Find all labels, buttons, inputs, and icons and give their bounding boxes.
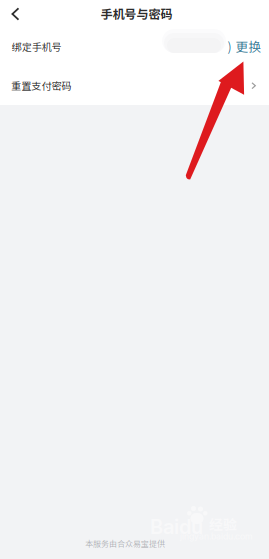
button[interactable]: 绑定手机号 — [0, 28, 269, 64]
staticText: 本服务由合众易宝提供 — [85, 537, 165, 549]
staticText: 更换 — [235, 37, 261, 55]
staticText: 手机号与密码 — [100, 5, 172, 22]
staticText: 绑定手机号 — [12, 39, 62, 54]
staticText: ) — [227, 38, 231, 55]
button[interactable]: Back — [0, 0, 30, 28]
button[interactable]: 重置支付密码 — [0, 64, 269, 105]
staticText: 重置支付密码 — [11, 78, 71, 93]
button[interactable]: 更换 — [235, 38, 263, 54]
